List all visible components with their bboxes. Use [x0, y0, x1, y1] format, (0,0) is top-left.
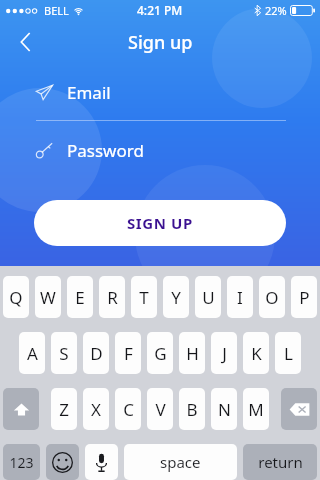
button[interactable]: M: [243, 388, 269, 430]
staticText: T: [139, 286, 149, 309]
button[interactable]: Q: [3, 276, 29, 318]
button[interactable]: Password: [0, 134, 320, 166]
staticText: G: [154, 342, 167, 365]
staticText: B: [186, 398, 198, 421]
button[interactable]: Email: [0, 76, 320, 108]
staticText: I: [237, 286, 243, 309]
button[interactable]: S: [51, 332, 77, 374]
staticText: Password: [67, 139, 144, 162]
button[interactable]: B: [179, 388, 205, 430]
button[interactable]: N: [211, 388, 237, 430]
button[interactable]: W: [35, 276, 61, 318]
staticText: 4:21 PM: [137, 2, 183, 18]
button[interactable]: V: [147, 388, 173, 430]
staticText: 22%: [265, 3, 287, 18]
staticText: J: [222, 342, 227, 365]
button[interactable]: Backspace: [281, 388, 317, 430]
button[interactable]: R: [99, 276, 125, 318]
staticText: space: [160, 452, 201, 472]
staticText: H: [186, 342, 199, 365]
button[interactable]: T: [131, 276, 157, 318]
staticText: S: [59, 342, 69, 365]
button[interactable]: Emoji: [46, 444, 79, 480]
button[interactable]: L: [275, 332, 301, 374]
staticText: D: [90, 342, 103, 365]
button[interactable]: J: [211, 332, 237, 374]
staticText: O: [265, 286, 279, 309]
button[interactable]: O: [259, 276, 285, 318]
button[interactable]: A: [19, 332, 45, 374]
staticText: X: [91, 398, 101, 421]
staticText: SIGN UP: [127, 213, 193, 233]
staticText: A: [27, 342, 38, 365]
button[interactable]: X: [83, 388, 109, 430]
staticText: K: [251, 342, 262, 365]
button[interactable]: Y: [163, 276, 189, 318]
staticText: Z: [59, 398, 69, 421]
staticText: Sign up: [128, 30, 193, 55]
staticText: P: [299, 286, 310, 309]
staticText: F: [124, 342, 133, 365]
button[interactable]: D: [83, 332, 109, 374]
staticText: C: [123, 398, 134, 421]
button[interactable]: P: [291, 276, 317, 318]
staticText: N: [218, 398, 231, 421]
button[interactable]: Z: [51, 388, 77, 430]
staticText: W: [40, 286, 56, 309]
button[interactable]: U: [195, 276, 221, 318]
staticText: L: [284, 342, 293, 365]
button[interactable]: I: [227, 276, 253, 318]
staticText: Q: [9, 286, 23, 309]
button[interactable]: 123: [3, 444, 40, 480]
button[interactable]: SIGN UP: [34, 200, 286, 246]
staticText: U: [202, 286, 215, 309]
button[interactable]: space: [124, 444, 237, 480]
button[interactable]: G: [147, 332, 173, 374]
button[interactable]: F: [115, 332, 141, 374]
button[interactable]: Shift: [3, 388, 39, 430]
button[interactable]: H: [179, 332, 205, 374]
staticText: Y: [171, 286, 181, 309]
button[interactable]: Dictate: [85, 444, 118, 480]
staticText: M: [248, 398, 264, 421]
button[interactable]: return: [243, 444, 317, 480]
staticText: E: [75, 286, 85, 309]
staticText: R: [107, 286, 118, 309]
button[interactable]: Back: [6, 23, 44, 61]
staticText: BELL: [44, 3, 69, 18]
staticText: Email: [67, 81, 111, 104]
staticText: V: [155, 398, 166, 421]
button[interactable]: E: [67, 276, 93, 318]
button[interactable]: K: [243, 332, 269, 374]
staticText: return: [258, 452, 303, 472]
staticText: 123: [9, 453, 34, 472]
button[interactable]: C: [115, 388, 141, 430]
